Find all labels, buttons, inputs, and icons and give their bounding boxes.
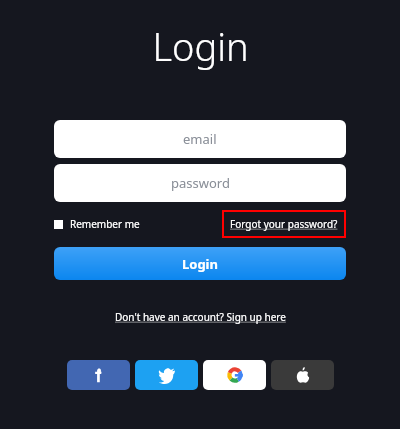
staticText: Forgot your password? (230, 217, 338, 231)
button[interactable]: password (54, 164, 346, 202)
staticText: Don't have an account? Sign up here (115, 310, 286, 324)
button[interactable]: Remember me (54, 215, 140, 233)
staticText: Login (152, 20, 249, 72)
button[interactable]: Sign in with Apple (271, 360, 334, 390)
button[interactable]: Sign in with Google (203, 360, 266, 390)
staticText: email (183, 130, 217, 148)
button[interactable]: Don't have an account? Sign up here (109, 307, 292, 327)
button[interactable]: email (54, 120, 346, 158)
staticText: Remember me (70, 217, 140, 231)
staticText: Login (182, 255, 218, 273)
button[interactable]: Login (54, 247, 346, 280)
button[interactable]: Sign in with Twitter (135, 360, 198, 390)
button[interactable]: Forgot your password? (222, 210, 346, 238)
button[interactable]: Sign in with Facebook (67, 360, 130, 390)
staticText: password (171, 174, 230, 192)
